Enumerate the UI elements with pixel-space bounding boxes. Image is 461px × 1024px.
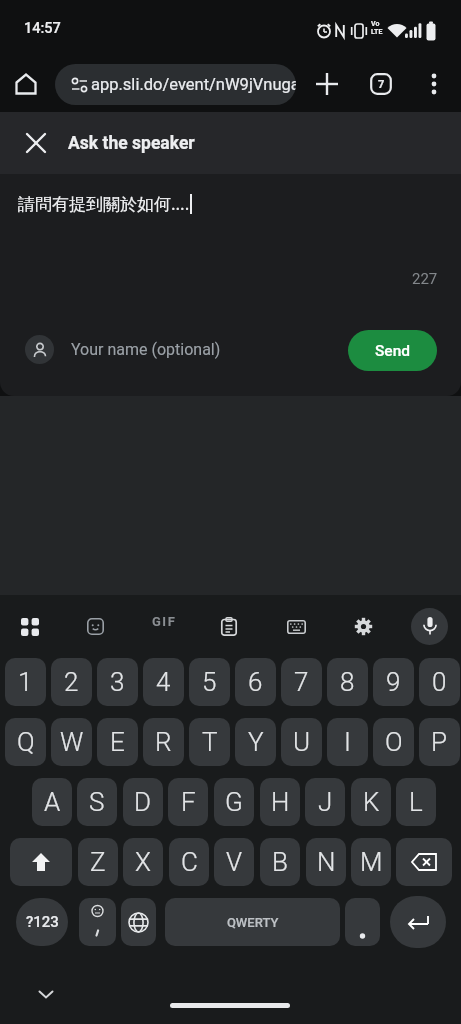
button[interactable]: R xyxy=(143,718,184,766)
button[interactable]: 1 xyxy=(5,658,46,706)
button[interactable]: U xyxy=(281,718,322,766)
staticText: N xyxy=(317,847,336,877)
staticText: L xyxy=(409,787,423,817)
staticText: S xyxy=(89,787,105,817)
staticText: QWERTY xyxy=(227,915,279,930)
button[interactable]: QWERTY xyxy=(165,898,340,946)
button[interactable] xyxy=(14,121,58,165)
button[interactable] xyxy=(38,990,54,999)
staticText: F xyxy=(181,787,196,817)
button[interactable] xyxy=(316,73,338,95)
button[interactable] xyxy=(18,324,338,377)
staticText: Q xyxy=(17,727,35,757)
button[interactable] xyxy=(0,174,461,314)
button[interactable]: F xyxy=(168,778,208,826)
button[interactable]: O xyxy=(373,718,414,766)
staticText: 1 xyxy=(18,667,33,697)
staticText: J xyxy=(318,787,333,817)
staticText: B xyxy=(272,847,288,877)
button[interactable]: 6 xyxy=(235,658,276,706)
button[interactable]: Z xyxy=(78,838,118,886)
button[interactable]: B xyxy=(260,838,300,886)
button[interactable] xyxy=(221,617,237,636)
button[interactable]: K xyxy=(351,778,391,826)
staticText: C xyxy=(181,847,198,877)
button[interactable]: V xyxy=(214,838,254,886)
staticText: X xyxy=(135,847,151,877)
staticText: M xyxy=(360,847,383,877)
staticText: O xyxy=(385,727,403,757)
button[interactable]: D xyxy=(123,778,163,826)
button[interactable]: Y xyxy=(235,718,276,766)
staticText: U xyxy=(293,727,311,757)
button[interactable]: ?123 xyxy=(16,898,68,946)
staticText: T xyxy=(202,727,218,757)
button[interactable]: GIF xyxy=(152,614,177,629)
button[interactable]: T xyxy=(189,718,230,766)
staticText: A xyxy=(44,787,61,817)
button[interactable] xyxy=(15,73,37,95)
staticText: 7 xyxy=(294,667,309,697)
staticText: E xyxy=(110,727,125,757)
button[interactable] xyxy=(10,838,72,886)
button[interactable]: 0 xyxy=(419,658,460,706)
button[interactable]: 7 xyxy=(370,73,392,95)
staticText: Send xyxy=(375,342,411,360)
staticText: R xyxy=(155,727,172,757)
staticText: Y xyxy=(248,727,264,757)
button[interactable]: G xyxy=(214,778,254,826)
staticText: G xyxy=(225,787,243,817)
button[interactable]: 8 xyxy=(327,658,368,706)
button[interactable]: 3 xyxy=(97,658,138,706)
button[interactable] xyxy=(21,618,39,636)
button[interactable]: 7 xyxy=(281,658,322,706)
button[interactable]: 9 xyxy=(373,658,414,706)
button[interactable]: J xyxy=(305,778,345,826)
staticText: 6 xyxy=(248,667,263,697)
button[interactable] xyxy=(390,896,446,948)
button[interactable]: M xyxy=(351,838,391,886)
staticText: P xyxy=(431,727,448,757)
staticText: K xyxy=(363,787,380,817)
button[interactable] xyxy=(287,620,306,634)
button[interactable]: 2 xyxy=(51,658,92,706)
staticText: Your name (optional) xyxy=(71,340,221,359)
button[interactable]: S xyxy=(77,778,117,826)
button[interactable]: Q xyxy=(5,718,46,766)
button[interactable]: Send xyxy=(348,330,437,371)
staticText: 2 xyxy=(64,667,79,697)
button[interactable] xyxy=(428,73,440,95)
button[interactable] xyxy=(79,898,116,946)
button[interactable]: X xyxy=(123,838,163,886)
button[interactable] xyxy=(345,898,380,946)
staticText: 請問有提到關於如何.... xyxy=(18,192,190,215)
staticText: Z xyxy=(90,847,106,877)
button[interactable]: W xyxy=(51,718,92,766)
staticText: I xyxy=(344,727,351,757)
button[interactable]: P xyxy=(419,718,460,766)
staticText: 3 xyxy=(110,667,125,697)
button[interactable] xyxy=(121,898,156,946)
button[interactable]: N xyxy=(306,838,346,886)
button[interactable]: A xyxy=(32,778,72,826)
button[interactable]: L xyxy=(396,778,436,826)
button[interactable]: 5 xyxy=(189,658,230,706)
staticText: V xyxy=(226,847,243,877)
button[interactable] xyxy=(354,617,373,636)
staticText: 5 xyxy=(202,667,217,697)
staticText: 0 xyxy=(432,667,447,697)
button[interactable]: 4 xyxy=(143,658,184,706)
button[interactable]: app.sli.do/event/nW9jVnuga xyxy=(55,64,296,105)
button[interactable] xyxy=(87,618,104,635)
staticText: ?123 xyxy=(26,913,59,931)
button[interactable] xyxy=(396,838,452,886)
button[interactable]: C xyxy=(169,838,209,886)
button[interactable] xyxy=(411,608,448,645)
staticText: W xyxy=(60,727,84,757)
button[interactable]: E xyxy=(97,718,138,766)
staticText: 4 xyxy=(156,667,171,697)
staticText: Vo xyxy=(371,20,380,28)
button[interactable]: I xyxy=(327,718,368,766)
staticText: 8 xyxy=(340,667,355,697)
button[interactable]: H xyxy=(260,778,300,826)
